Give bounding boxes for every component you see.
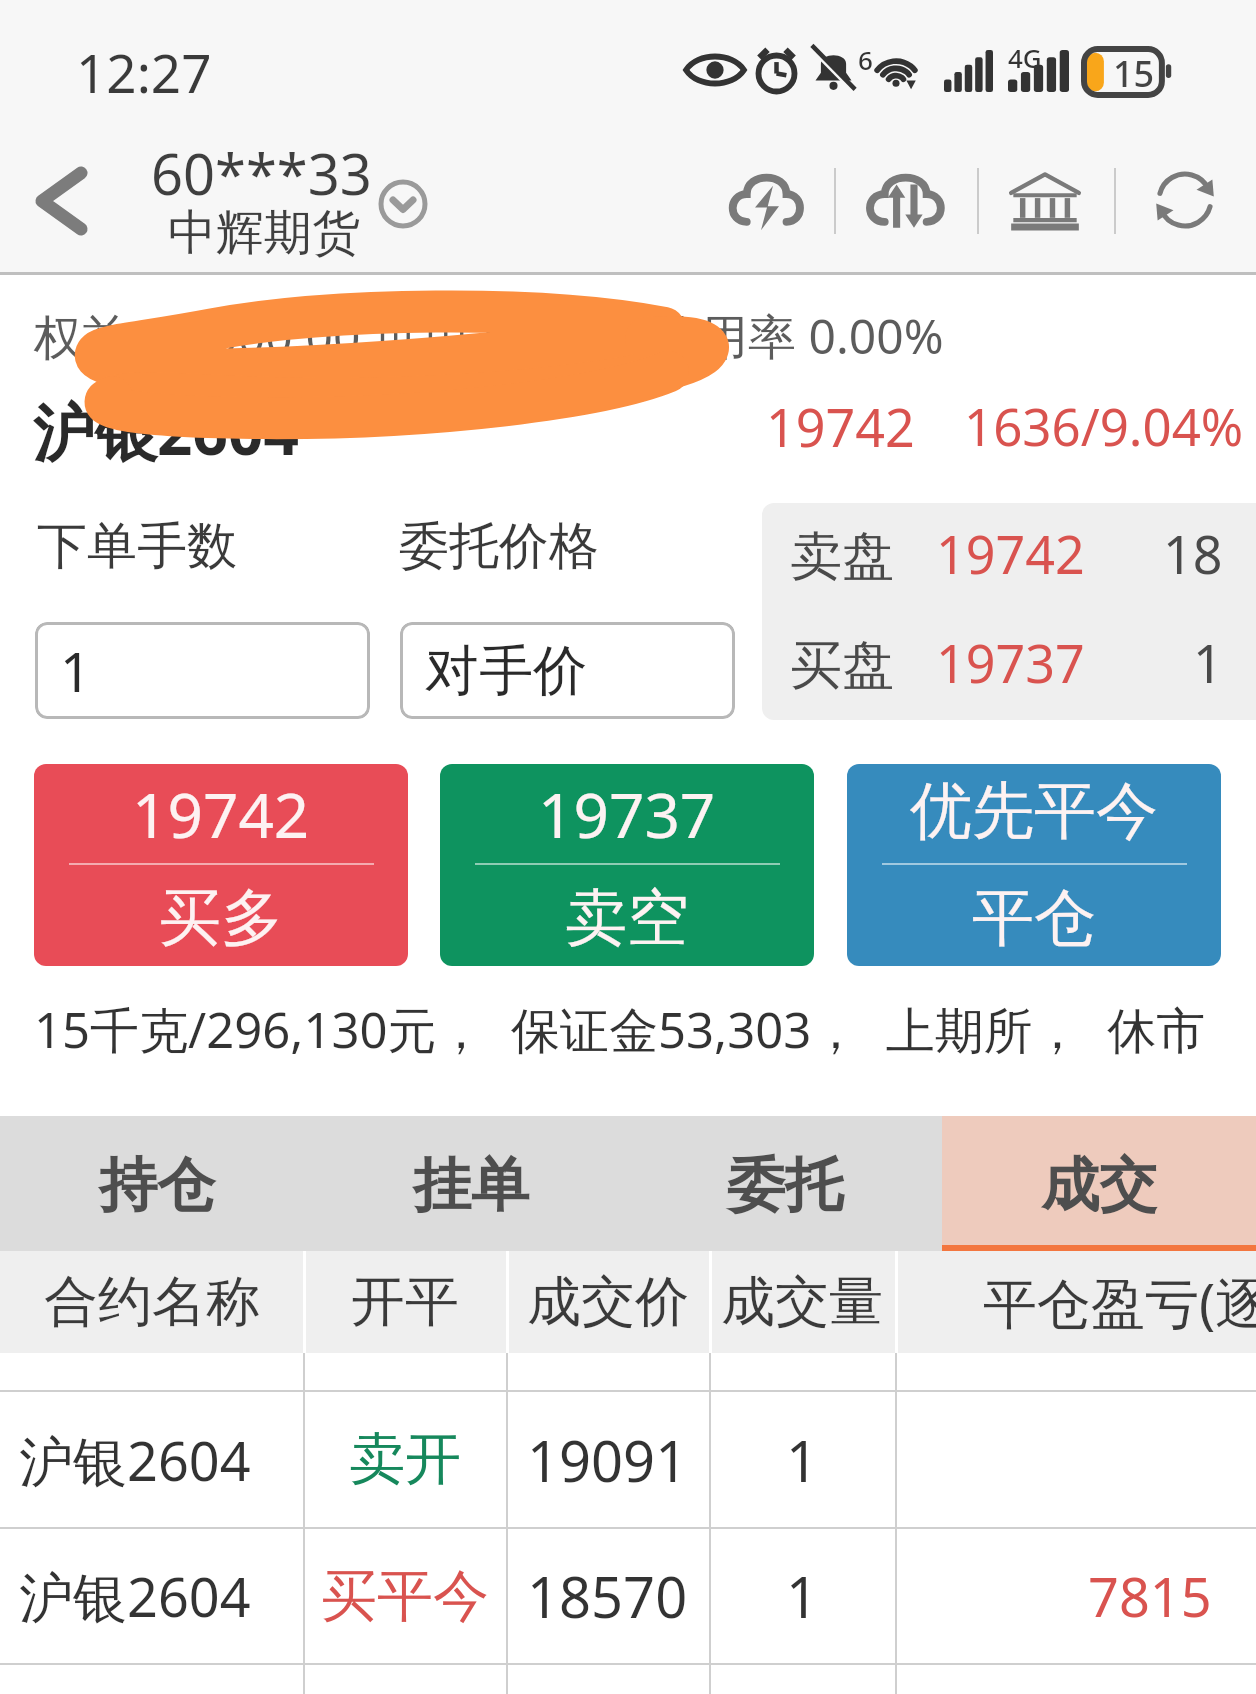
button[interactable]: 沪银2604 [0,1529,1256,1663]
staticText: 12:27 [76,36,212,108]
staticText: 委托 [727,1149,843,1222]
staticText: 成交价 [527,1268,689,1336]
staticText: 1636/9.04% [964,391,1244,460]
staticText: 7815 [1088,1559,1212,1633]
staticText: 中辉期货 [168,203,360,263]
staticText: 19737 [538,772,716,856]
staticText: 18 [1163,518,1223,589]
button[interactable]: 1 [35,622,370,719]
button[interactable]: Refresh [1129,115,1241,272]
button[interactable]: 委托 [628,1116,942,1251]
staticText: 开平 [351,1268,459,1336]
staticText: 持仓 [99,1149,215,1222]
staticText: 成交量 [721,1268,883,1336]
staticText: 60***33 [151,135,372,211]
staticText: 4G [1008,40,1042,75]
staticText: 沪银2604 [19,1559,251,1633]
button[interactable]: 优先平今 [847,764,1221,966]
staticText: 19737 [936,627,1085,698]
staticText: 沪银2604 [33,389,299,474]
button[interactable]: 成交 [942,1116,1256,1251]
staticText: 买多 [159,879,283,957]
staticText: 15千克/296,130元， 保证金53,303， 上期所， 休市 [34,996,1206,1063]
staticText: 委托价格 [399,515,599,578]
staticText: 优先平今 [910,772,1158,850]
staticText: 平仓 [972,879,1096,957]
staticText: 卖空 [565,879,689,957]
button[interactable]: 持仓 [0,1116,314,1251]
staticText: 卖盘 [790,524,894,590]
staticText: 权益 85,000.00 可用 85,000.00 [34,303,700,369]
button[interactable]: 19742 [34,764,408,966]
button[interactable]: Bank [989,115,1101,272]
button[interactable]: Transfer [848,115,960,272]
staticText: 1 [1193,627,1223,698]
staticText: 合约名称 [44,1268,260,1336]
staticText: 6 [858,42,873,77]
button[interactable]: 挂单 [314,1116,628,1251]
staticText: 15 [1113,49,1155,95]
staticText: 使用率 0.00% [652,303,944,369]
button[interactable]: 对手价 [400,622,735,719]
staticText: 买平今 [321,1561,489,1632]
staticText: 卖开 [349,1424,461,1495]
button[interactable]: 60***33 [140,115,440,272]
staticText: 下单手数 [37,515,237,578]
button[interactable]: Back [0,115,122,272]
staticText: 1 [786,1558,819,1634]
staticText: 挂单 [413,1149,529,1222]
staticText: 沪银2604 [19,1423,251,1497]
staticText: 平仓盈亏(逐笔 [983,1265,1256,1339]
staticText: 19091 [527,1422,688,1498]
button[interactable]: 19737 [440,764,814,966]
staticText: 买盘 [790,633,894,699]
staticText: 19742 [936,518,1085,589]
button[interactable]: Quick order [709,115,821,272]
staticText: 1 [786,1422,819,1498]
staticText: 1 [60,634,91,708]
staticText: 19742 [766,391,915,462]
staticText: 对手价 [425,637,587,705]
staticText: 19742 [132,772,310,856]
staticText: 18570 [527,1558,688,1634]
staticText: 成交 [1041,1149,1157,1222]
button[interactable]: 沪银2604 [0,1392,1256,1527]
